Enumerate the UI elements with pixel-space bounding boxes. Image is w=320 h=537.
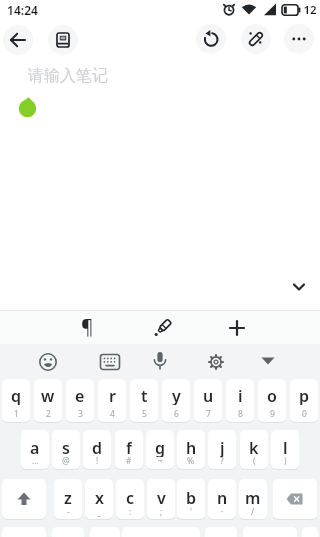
staticText: q: [11, 385, 22, 405]
staticText: z: [64, 487, 72, 507]
staticText: b: [186, 487, 197, 507]
button[interactable]: v: [147, 479, 175, 519]
button[interactable]: [204, 350, 228, 374]
staticText: n: [217, 487, 228, 507]
staticText: 9: [270, 408, 275, 420]
staticText: ': [190, 506, 192, 518]
button[interactable]: w: [34, 379, 62, 422]
button[interactable]: f: [115, 430, 143, 469]
staticText: _: [97, 506, 101, 518]
staticText: y: [172, 385, 181, 405]
staticText: k: [249, 437, 259, 457]
button[interactable]: l: [271, 430, 299, 469]
button[interactable]: [241, 24, 271, 54]
staticText: ;: [160, 506, 163, 518]
button[interactable]: u: [194, 379, 222, 422]
button[interactable]: [227, 318, 247, 338]
staticText: %: [187, 455, 195, 467]
button[interactable]: b: [177, 479, 205, 519]
button[interactable]: k: [240, 430, 268, 469]
staticText: 4: [110, 408, 115, 420]
staticText: i: [238, 385, 243, 405]
button[interactable]: t: [130, 379, 158, 422]
button[interactable]: y: [162, 379, 190, 422]
button[interactable]: [149, 313, 177, 341]
staticText: :: [129, 506, 132, 518]
button[interactable]: g: [146, 430, 174, 469]
staticText: s: [62, 437, 70, 457]
button[interactable]: [148, 349, 172, 373]
button[interactable]: [3, 25, 33, 55]
button[interactable]: h: [177, 430, 205, 469]
staticText: o: [267, 385, 277, 405]
button[interactable]: r: [98, 379, 126, 422]
button[interactable]: d: [83, 430, 111, 469]
button[interactable]: [98, 350, 122, 374]
button[interactable]: q: [2, 379, 30, 422]
staticText: f: [126, 437, 132, 457]
button[interactable]: [292, 281, 306, 293]
staticText: x: [95, 487, 104, 507]
button[interactable]: [196, 24, 226, 54]
staticText: !: [96, 455, 99, 467]
staticText: m: [245, 487, 261, 507]
button[interactable]: [48, 25, 78, 55]
staticText: j: [220, 437, 225, 457]
button[interactable]: [36, 350, 60, 374]
staticText: v: [157, 487, 166, 507]
staticText: p: [299, 385, 310, 405]
staticText: t: [141, 385, 148, 405]
button[interactable]: a: [21, 430, 49, 469]
button[interactable]: n: [208, 479, 236, 519]
staticText: a: [30, 437, 40, 457]
button[interactable]: m: [239, 479, 267, 519]
staticText: ): [284, 455, 287, 467]
staticText: ~: [158, 455, 163, 467]
button[interactable]: j: [208, 430, 236, 469]
button[interactable]: o: [258, 379, 286, 422]
button[interactable]: p: [290, 379, 318, 422]
staticText: w: [41, 385, 55, 405]
staticText: ¶: [81, 314, 94, 338]
staticText: …: [32, 455, 39, 467]
staticText: 请输入笔记: [28, 66, 108, 84]
button[interactable]: x: [85, 479, 113, 519]
staticText: /: [251, 506, 255, 518]
staticText: c: [126, 487, 135, 507]
staticText: d: [92, 437, 103, 457]
staticText: (: [253, 455, 256, 467]
staticText: h: [186, 437, 197, 457]
button[interactable]: [273, 479, 317, 519]
button[interactable]: [2, 479, 46, 519]
button[interactable]: c: [116, 479, 144, 519]
button[interactable]: s: [52, 430, 80, 469]
button[interactable]: ¶: [72, 314, 102, 338]
staticText: r: [109, 385, 116, 405]
staticText: 7: [206, 408, 211, 420]
button[interactable]: e: [66, 379, 94, 422]
staticText: @: [62, 455, 70, 467]
staticText: u: [203, 385, 214, 405]
staticText: 0: [302, 408, 307, 420]
staticText: 6: [174, 408, 179, 420]
staticText: e: [75, 385, 85, 405]
staticText: 8: [238, 408, 243, 420]
button[interactable]: z: [54, 479, 82, 519]
button[interactable]: [260, 354, 276, 368]
staticText: ?: [220, 455, 224, 467]
button[interactable]: [284, 24, 314, 54]
staticText: g: [155, 437, 166, 457]
staticText: l: [283, 437, 288, 457]
button[interactable]: i: [226, 379, 254, 422]
staticText: 3: [78, 408, 83, 420]
staticText: 2: [46, 408, 51, 420]
staticText: 1: [14, 408, 19, 420]
staticText: 5: [142, 408, 147, 420]
